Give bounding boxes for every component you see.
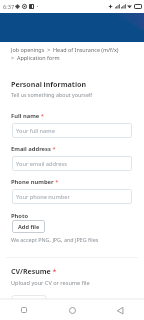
staticText: Your full name: [16, 127, 55, 135]
button[interactable]: > Application form: [11, 54, 60, 61]
button[interactable]: Recent apps: [0, 300, 48, 320]
button[interactable]: Your phone number: [12, 189, 132, 204]
staticText: > Application form: [11, 54, 60, 61]
button[interactable]: Back: [96, 300, 144, 320]
button[interactable]: Home: [48, 300, 96, 320]
staticText: Tell us something about yourself: [11, 91, 93, 98]
button[interactable]: Job openings > Head of Insurance (m/f/x): [11, 46, 119, 53]
staticText: We accept PNG, JPG, and JPEG files: [11, 236, 99, 243]
staticText: Your phone number: [16, 193, 70, 201]
staticText: Full name *: [11, 112, 44, 120]
staticText: 6:37: [3, 3, 15, 11]
staticText: Your email address: [16, 160, 67, 168]
button[interactable]: Your email address: [12, 156, 132, 171]
button[interactable]: Your full name: [12, 123, 132, 138]
button[interactable]: Add file: [12, 220, 45, 233]
staticText: Photo: [11, 212, 29, 220]
staticText: Upload your CV or resume file: [11, 279, 90, 287]
staticText: CV/Resume *: [11, 267, 57, 277]
staticText: Job openings > Head of Insurance (m/f/x): [11, 46, 119, 53]
staticText: Email address *: [11, 145, 56, 153]
staticText: Phone number *: [11, 178, 59, 186]
staticText: Personal information: [11, 79, 87, 89]
staticText: Add file: [18, 223, 40, 231]
